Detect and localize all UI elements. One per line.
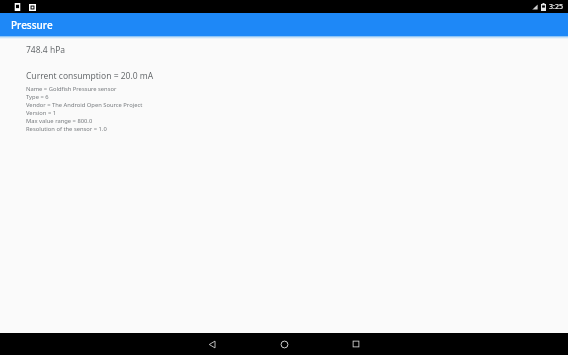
staticText: Resolution of the sensor = 1.0 [26,125,107,133]
staticText: Type = 6 [26,93,49,101]
staticText: Pressure [11,18,53,32]
staticText: Current consumption = 20.0 mA [26,70,154,82]
staticText: Max value range = 800.0 [26,117,93,125]
button[interactable]: Home [266,333,302,355]
button[interactable]: Back [194,333,230,355]
staticText: Vendor = The Android Open Source Project [26,101,143,109]
staticText: Name = Goldfish Pressure sensor [26,85,117,93]
staticText: 3:25 [549,2,563,12]
staticText: 748.4 hPa [26,44,66,56]
staticText: Version = 1 [26,109,57,117]
button[interactable]: Recent apps [338,333,374,355]
